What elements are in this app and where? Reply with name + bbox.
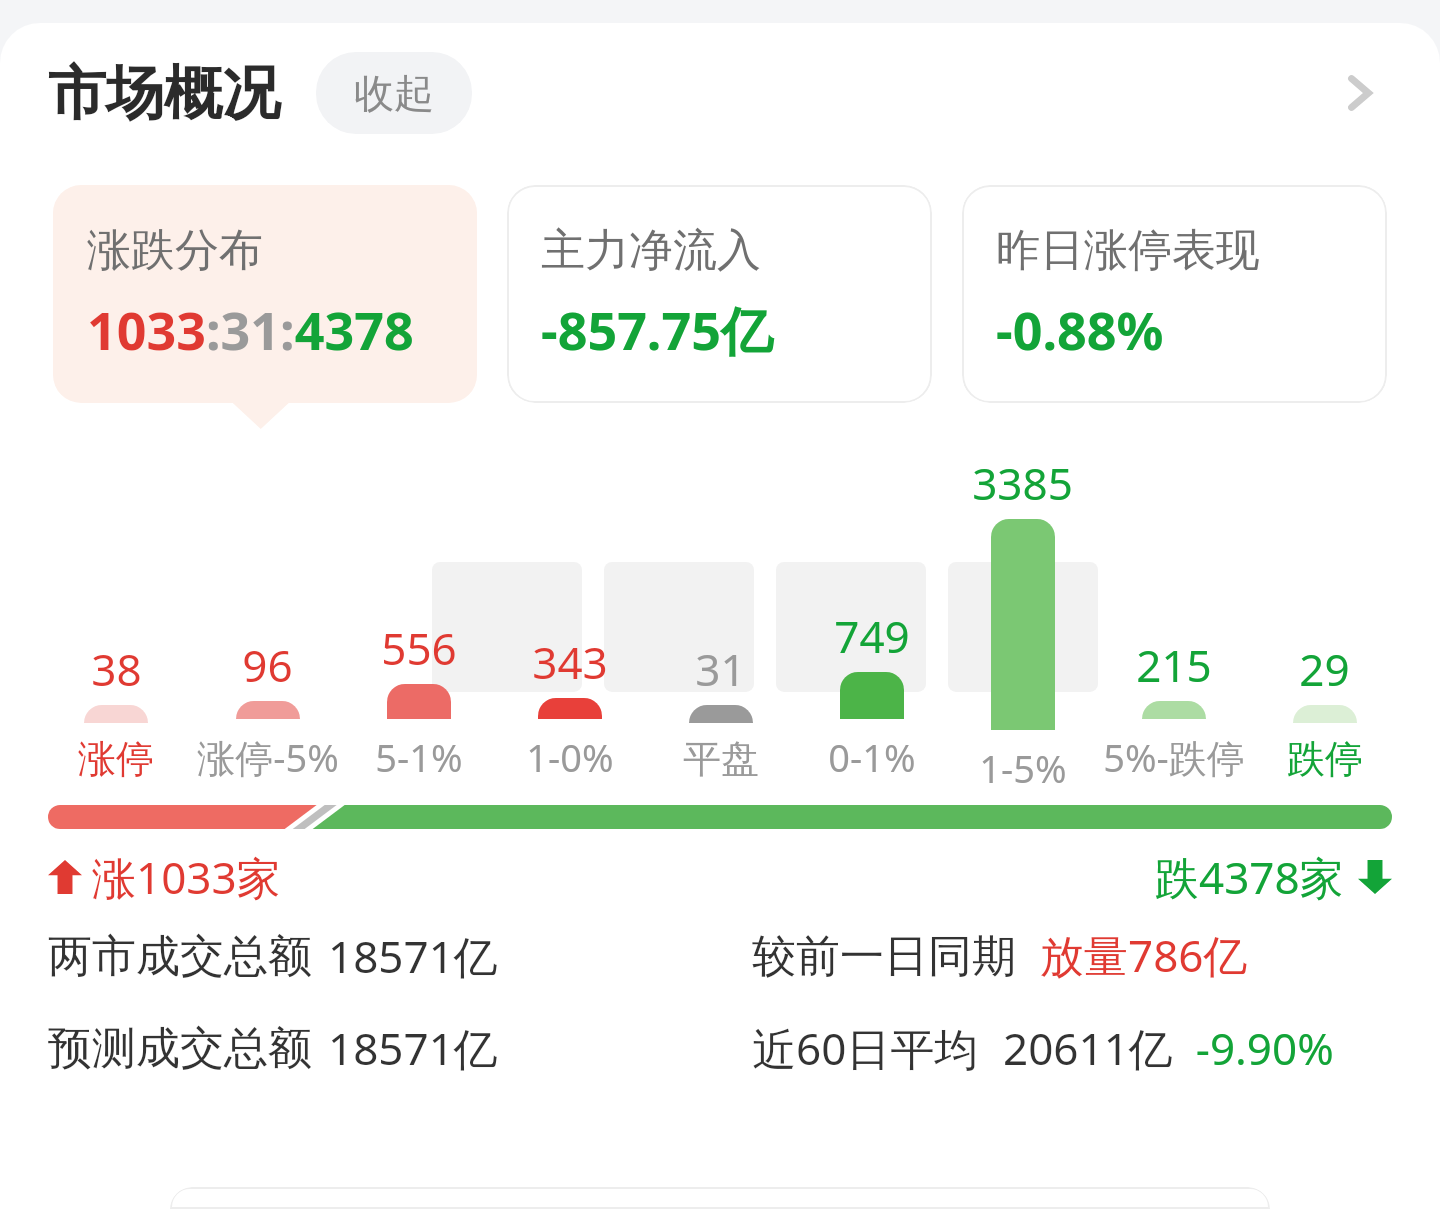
button[interactable]: 昨日涨停表现	[962, 185, 1387, 403]
button[interactable]	[170, 1187, 1270, 1209]
staticText: 跌4378家	[1155, 847, 1344, 907]
staticText: 749	[834, 606, 910, 666]
staticText: 0-1%	[828, 731, 916, 783]
staticText: 5-1%	[375, 731, 463, 783]
staticText: -0.88%	[996, 294, 1164, 365]
staticText: 跌停	[1287, 735, 1363, 783]
staticText: 涨停	[78, 735, 154, 783]
staticText: 市场概况	[48, 57, 280, 130]
staticText: 31	[695, 639, 746, 699]
staticText: 主力净流入	[541, 223, 761, 278]
staticText: 5%-跌停	[1103, 731, 1245, 783]
staticText: 平盘	[683, 735, 759, 783]
staticText: 放量786亿 4.42%	[1040, 925, 1392, 987]
staticText: 38	[91, 639, 142, 699]
staticText: 两市成交总额	[48, 929, 312, 984]
staticText: 近60日平均	[752, 1018, 979, 1078]
staticText: 96	[242, 635, 293, 695]
staticText: 18571亿	[328, 926, 498, 986]
staticText: 1033:31:4378	[87, 294, 414, 365]
staticText: 涨跌分布	[87, 223, 263, 278]
staticText: 1-0%	[526, 731, 614, 783]
staticText: 昨日涨停表现	[996, 223, 1260, 278]
staticText: 343	[532, 632, 608, 692]
staticText: 预测成交总额	[48, 1021, 312, 1076]
staticText: 556	[381, 618, 457, 678]
staticText: 收起	[354, 68, 434, 118]
staticText: 29	[1299, 639, 1350, 699]
staticText: 215	[1136, 635, 1212, 695]
button[interactable]: 收起	[316, 52, 472, 134]
staticText: 18571亿	[328, 1018, 498, 1078]
staticText: 较前一日同期	[752, 929, 1016, 984]
staticText: 涨停-5%	[197, 731, 339, 783]
staticText: 涨1033家	[92, 847, 281, 907]
button[interactable]: 涨跌分布	[53, 185, 477, 403]
staticText: -857.75亿	[541, 294, 773, 365]
button[interactable]: 主力净流入	[507, 185, 932, 403]
staticText: 1-5%	[979, 742, 1067, 783]
staticText: 20611亿 -9.90%	[1003, 1018, 1334, 1078]
button[interactable]: More	[1320, 53, 1400, 133]
staticText: 3385	[972, 453, 1073, 513]
